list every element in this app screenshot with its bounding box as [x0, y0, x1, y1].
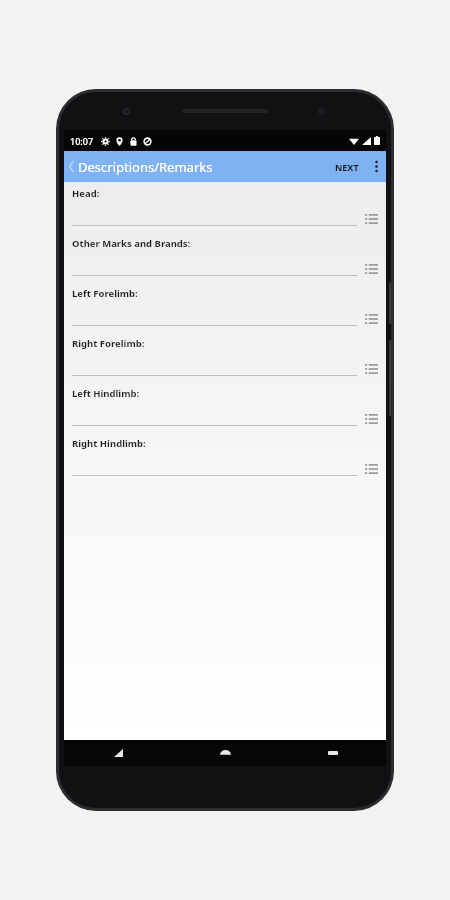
button[interactable]: NEXT: [328, 151, 366, 182]
staticText: Right Forelimb:: [72, 337, 145, 350]
button[interactable]: Choose from list: [362, 310, 380, 328]
staticText: 10:07: [70, 135, 94, 147]
button[interactable]: Choose from list: [362, 210, 380, 228]
button[interactable]: Right Forelimb:: [64, 332, 386, 382]
button[interactable]: Left Hindlimb:: [64, 382, 386, 432]
button[interactable]: Home: [172, 740, 279, 766]
staticText: NEXT: [335, 161, 359, 173]
button[interactable]: Other Marks and Brands:: [64, 232, 386, 282]
button[interactable]: Recent apps: [279, 740, 386, 766]
button[interactable]: Choose from list: [362, 360, 380, 378]
staticText: Descriptions/Remarks: [78, 158, 213, 176]
button[interactable]: Choose from list: [362, 460, 380, 478]
button[interactable]: Choose from list: [362, 260, 380, 278]
button[interactable]: Back: [64, 151, 78, 182]
staticText: Left Forelimb:: [72, 287, 138, 300]
button[interactable]: Head:: [64, 182, 386, 232]
staticText: Right Hindlimb:: [72, 437, 146, 450]
button[interactable]: Choose from list: [362, 410, 380, 428]
staticText: Head:: [72, 187, 100, 200]
button[interactable]: Left Forelimb:: [64, 282, 386, 332]
staticText: Left Hindlimb:: [72, 387, 140, 400]
button[interactable]: Back: [64, 740, 172, 766]
button[interactable]: More options: [366, 151, 386, 182]
staticText: Other Marks and Brands:: [72, 237, 191, 250]
button[interactable]: Right Hindlimb:: [64, 432, 386, 482]
